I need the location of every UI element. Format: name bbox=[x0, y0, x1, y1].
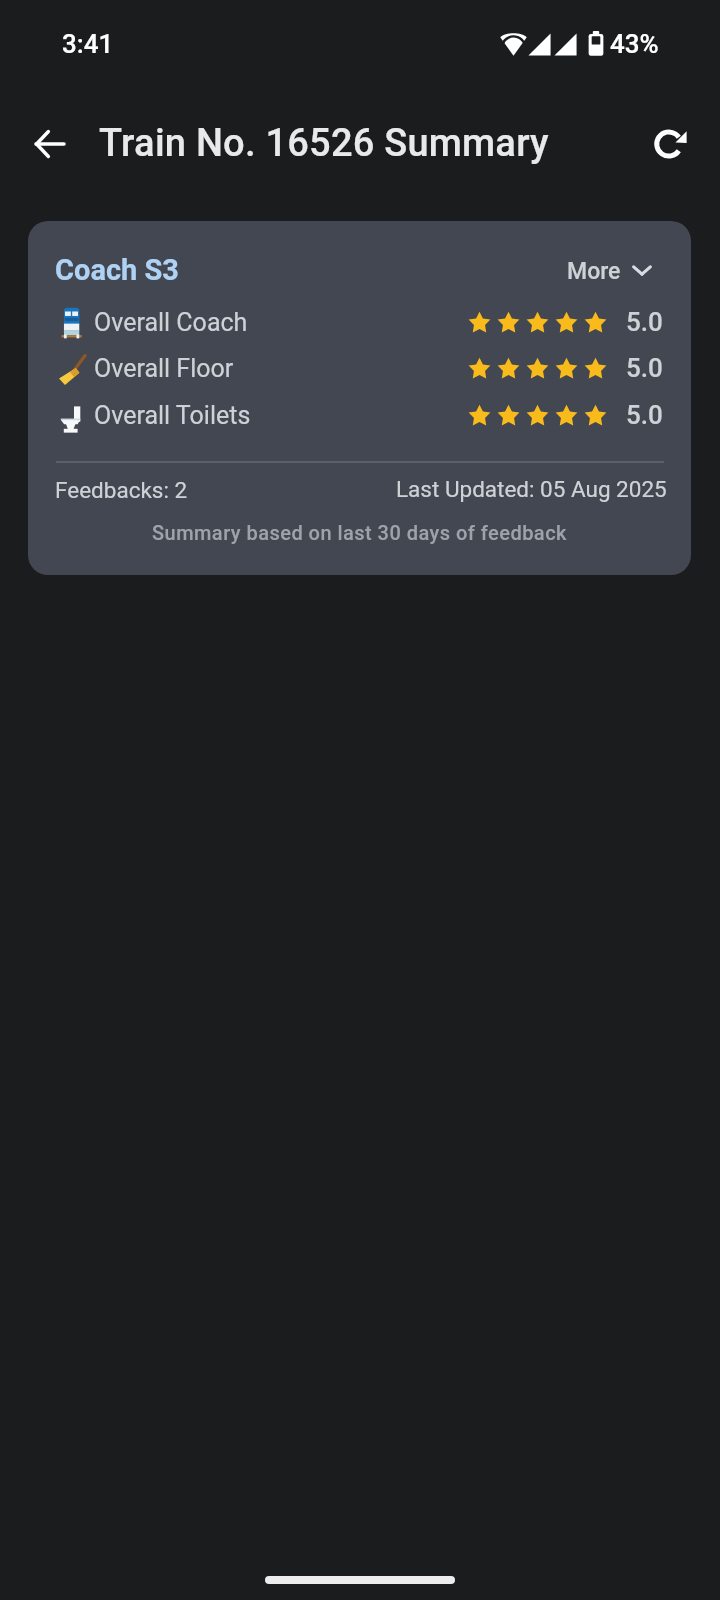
button[interactable]: More bbox=[553, 248, 669, 295]
button[interactable]: Overall Toilets bbox=[28, 392, 691, 438]
staticText: 43% bbox=[610, 29, 659, 59]
button[interactable]: Back bbox=[20, 114, 80, 174]
staticText: Overall Coach bbox=[94, 308, 248, 337]
staticText: Coach S3 bbox=[55, 253, 180, 287]
staticText: Overall Toilets bbox=[94, 401, 251, 430]
staticText: More bbox=[567, 258, 621, 285]
staticText: 5.0 bbox=[626, 400, 663, 430]
button[interactable]: Overall Coach bbox=[28, 299, 691, 345]
staticText: 5.0 bbox=[626, 307, 663, 337]
staticText: 5.0 bbox=[626, 353, 663, 383]
staticText: Overall Floor bbox=[94, 354, 234, 383]
staticText: 3:41 bbox=[62, 29, 114, 59]
staticText: Train No. 16526 Summary bbox=[99, 121, 549, 166]
button[interactable]: Overall Floor bbox=[28, 345, 691, 391]
staticText: Summary based on last 30 days of feedbac… bbox=[28, 521, 691, 544]
button[interactable]: Refresh bbox=[641, 114, 701, 174]
staticText: Last Updated: 05 Aug 2025 bbox=[396, 476, 667, 502]
staticText: Feedbacks: 2 bbox=[55, 477, 188, 503]
button[interactable]: Coach S3 bbox=[28, 221, 691, 575]
